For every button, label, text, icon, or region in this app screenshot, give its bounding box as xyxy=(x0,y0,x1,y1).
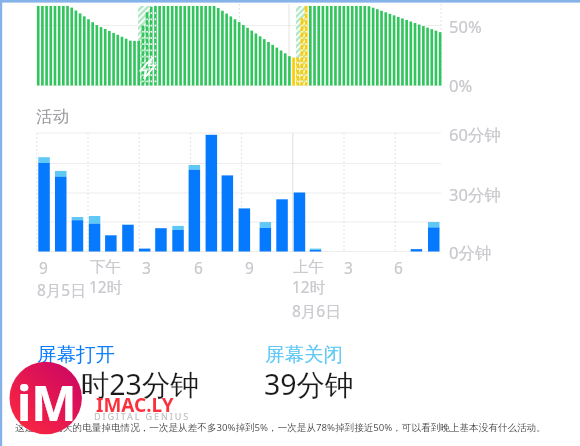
staticText: 6 xyxy=(194,257,203,278)
staticText: 12时 xyxy=(292,276,326,297)
staticText: DIGITAL GENIUS xyxy=(94,410,190,422)
staticText: 8月5日 xyxy=(37,279,86,300)
staticText: 8月6日 xyxy=(292,300,341,321)
staticText: 39分钟 xyxy=(264,365,354,404)
staticText: 3 xyxy=(142,257,151,278)
staticText: 9 xyxy=(245,257,254,278)
staticText: 0分钟 xyxy=(449,241,492,264)
staticText: IMAC.LY xyxy=(96,392,174,418)
staticText: 6 xyxy=(394,257,403,278)
staticText: 活动 xyxy=(36,106,69,127)
staticText: 这是最近两天的电量掉电情况，一次是从差不多30%掉到5%，一次是从78%掉到接近… xyxy=(15,421,546,434)
staticText: 12时 xyxy=(89,276,123,297)
staticText: 3 xyxy=(344,257,353,278)
staticText: 1小时23分钟 xyxy=(36,365,199,404)
staticText: iM xyxy=(17,370,77,435)
staticText: 屏幕打开 xyxy=(37,342,115,367)
staticText: 0% xyxy=(449,74,473,96)
staticText: 上午 xyxy=(293,257,324,277)
staticText: 30分钟 xyxy=(449,183,501,206)
staticText: 屏幕关闭 xyxy=(265,342,343,367)
staticText: 下午 xyxy=(90,257,121,277)
staticText: 9 xyxy=(39,257,48,278)
staticText: 60分钟 xyxy=(449,123,501,146)
staticText: 50% xyxy=(449,15,482,37)
